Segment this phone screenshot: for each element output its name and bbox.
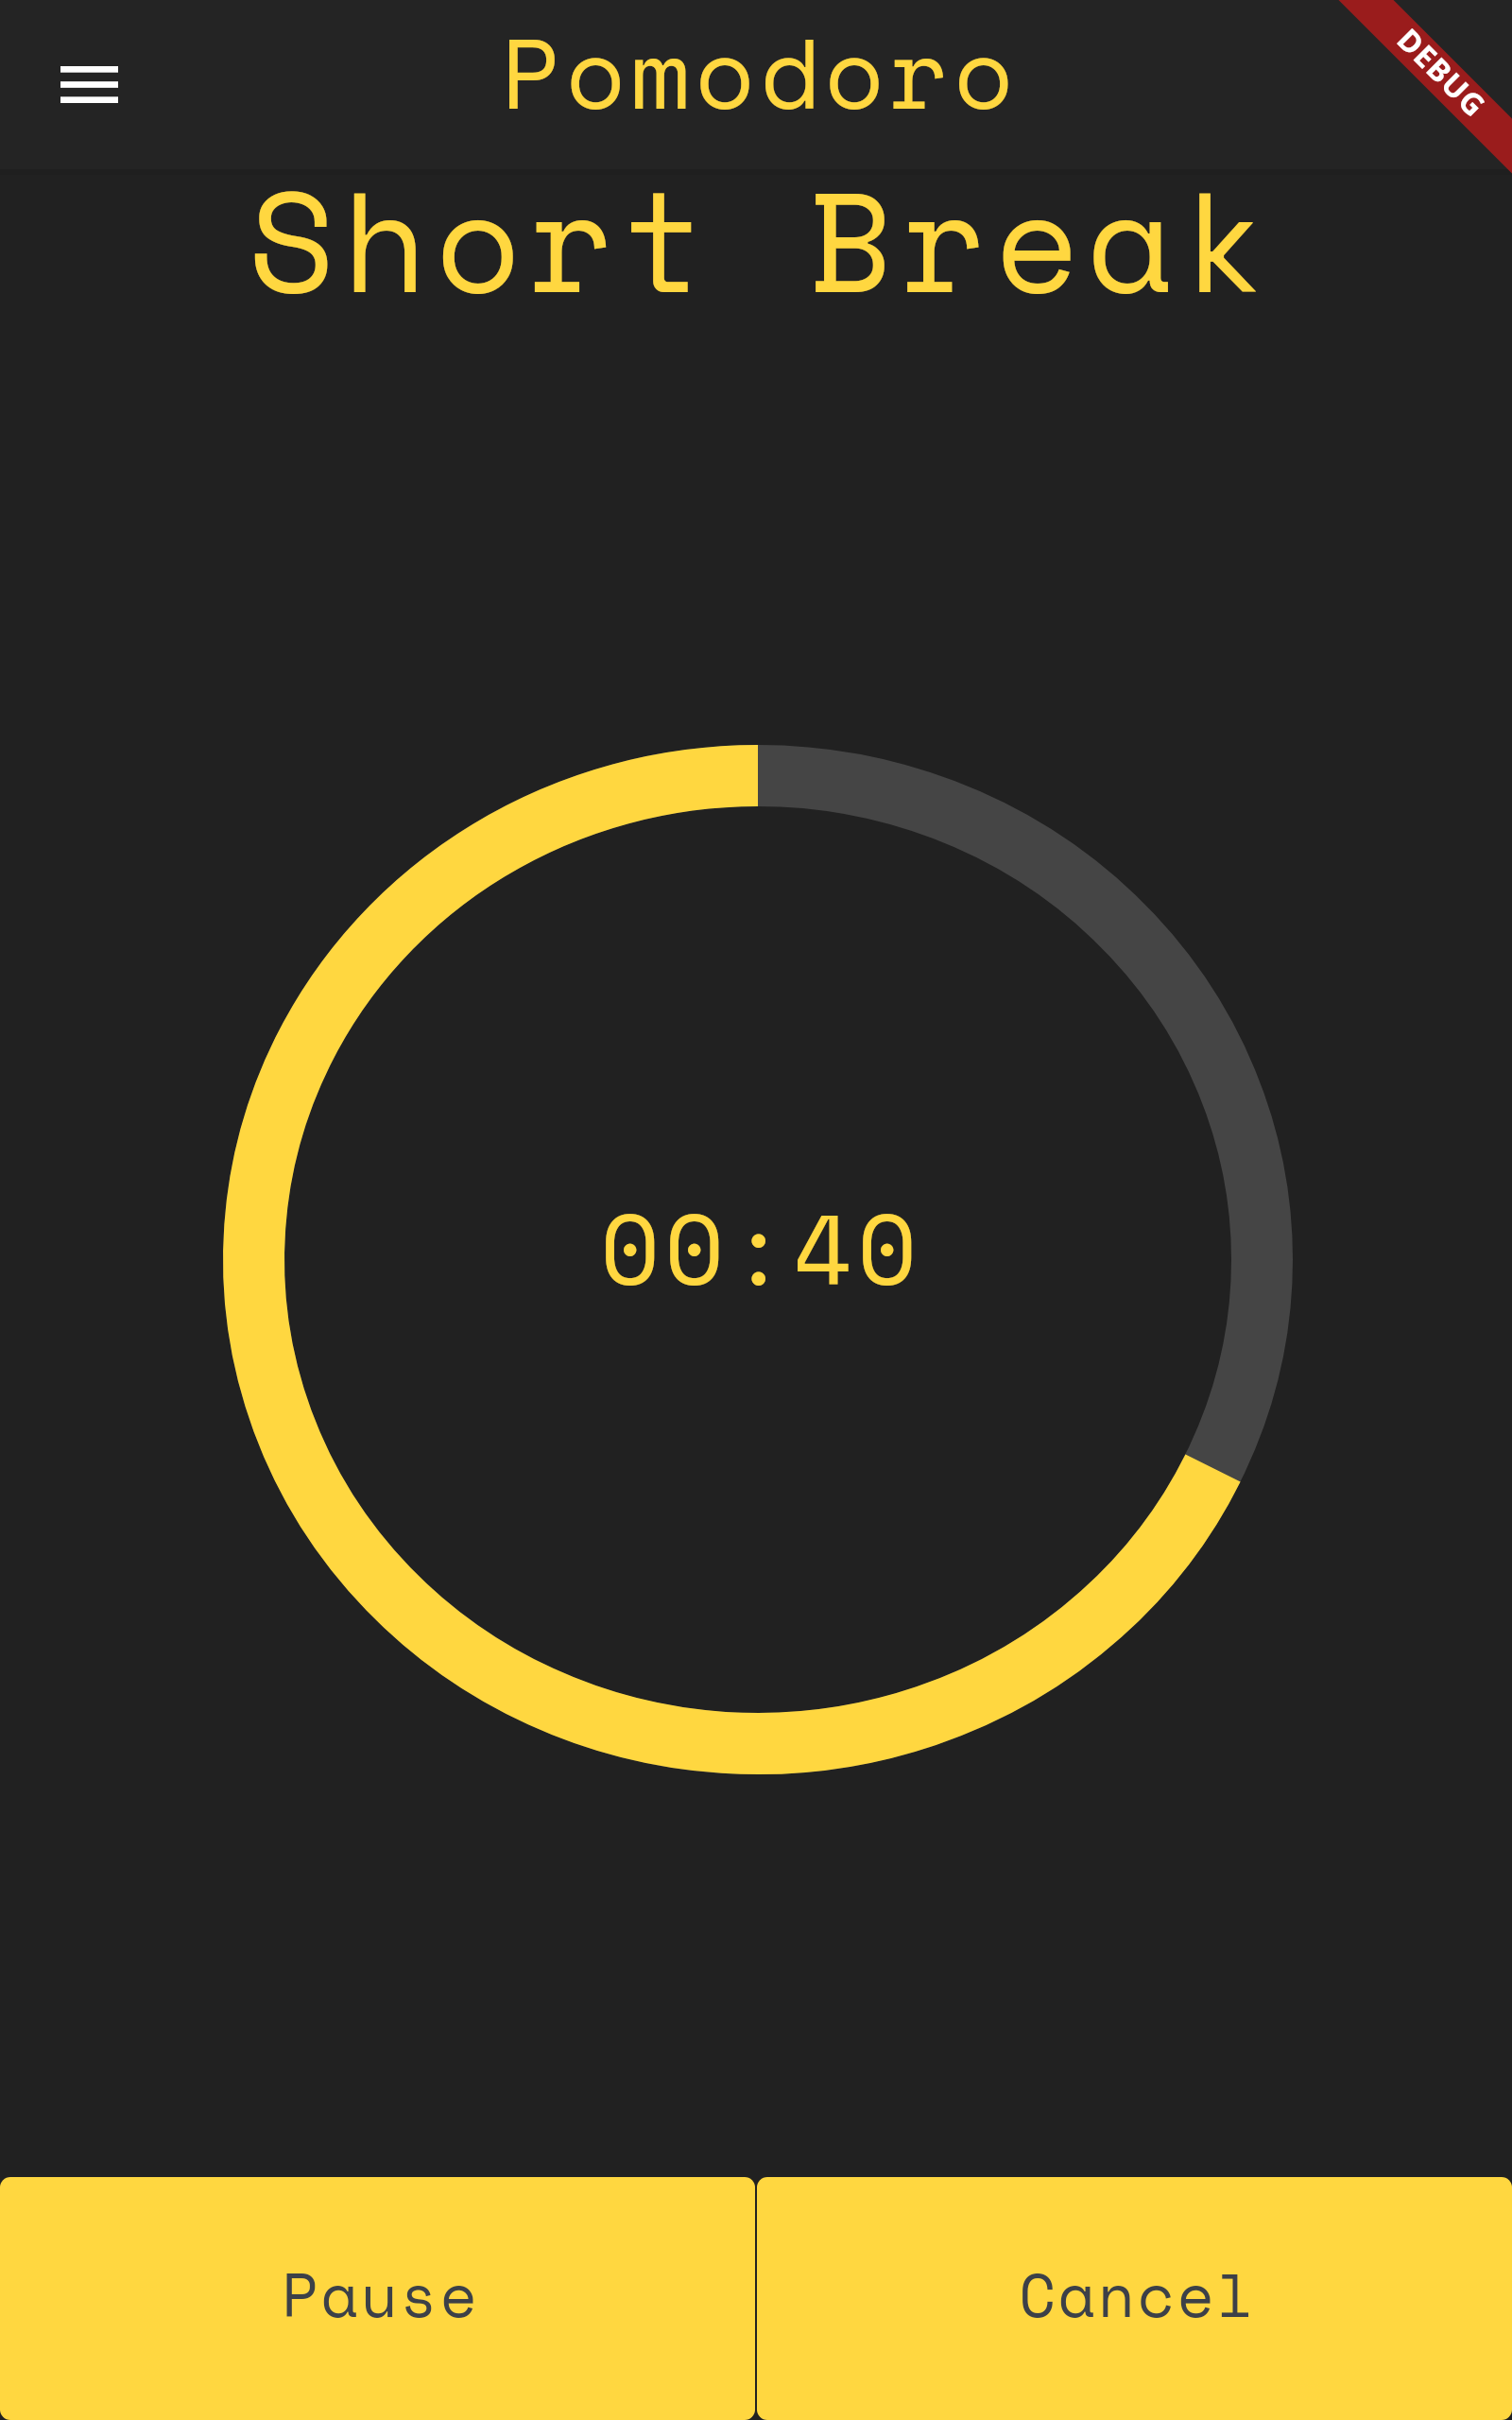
staticText: Cancel — [1019, 2249, 1257, 2339]
button[interactable]: Pause — [0, 2177, 755, 2420]
staticText: 00:40 — [600, 1175, 921, 1320]
staticText: Short Break — [249, 135, 1274, 342]
button[interactable]: Cancel — [757, 2177, 1512, 2420]
button[interactable]: Menu — [32, 27, 146, 141]
staticText: Pomodoro — [501, 0, 1019, 144]
staticText: DEBUG — [1390, 19, 1495, 124]
staticText: Pause — [282, 2249, 480, 2339]
